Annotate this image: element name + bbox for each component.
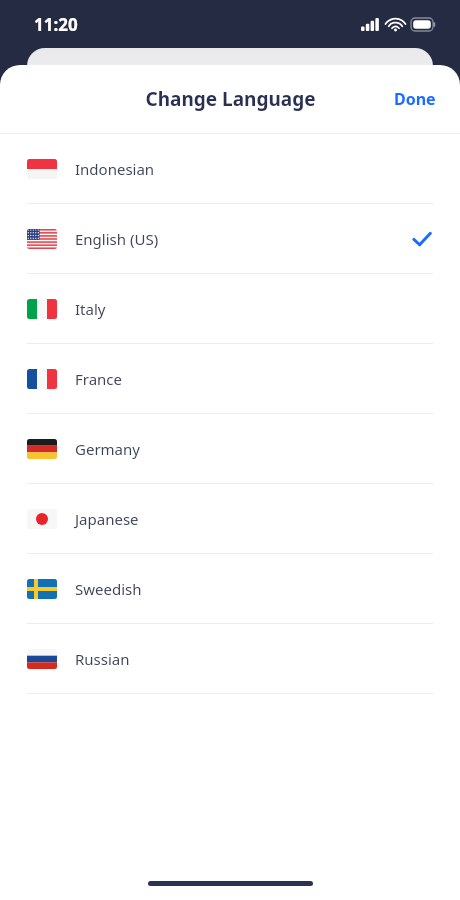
button[interactable]: Russian [0, 624, 460, 693]
button[interactable]: Sweedish [0, 554, 460, 623]
button[interactable]: English (US) [0, 204, 460, 273]
button[interactable]: Done [370, 76, 460, 122]
staticText: 11:20 [34, 13, 78, 36]
staticText: Russian [75, 649, 130, 669]
staticText: Done [394, 88, 436, 110]
staticText: Sweedish [75, 579, 142, 599]
button[interactable]: Italy [0, 274, 460, 343]
staticText: France [75, 369, 123, 389]
staticText: Italy [75, 299, 106, 319]
staticText: English (US) [75, 229, 159, 249]
staticText: Change Language [145, 86, 316, 112]
staticText: Germany [75, 439, 140, 459]
button[interactable]: Japanese [0, 484, 460, 553]
button[interactable]: Germany [0, 414, 460, 483]
staticText: Japanese [75, 509, 139, 529]
staticText: Indonesian [75, 159, 155, 179]
button[interactable]: Indonesian [0, 134, 460, 203]
button[interactable]: France [0, 344, 460, 413]
other: Selected [411, 228, 433, 250]
